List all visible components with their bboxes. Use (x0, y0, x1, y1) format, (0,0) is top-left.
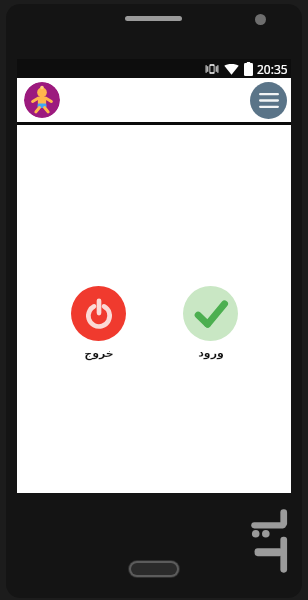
button[interactable]: ورود (177, 284, 244, 362)
staticText: ورود (198, 347, 224, 360)
button[interactable]: App logo (24, 82, 60, 118)
staticText: خروج (84, 347, 114, 360)
button[interactable]: خروج (65, 284, 132, 362)
button[interactable]: Menu (250, 82, 287, 119)
staticText: 20:35 (257, 61, 288, 77)
